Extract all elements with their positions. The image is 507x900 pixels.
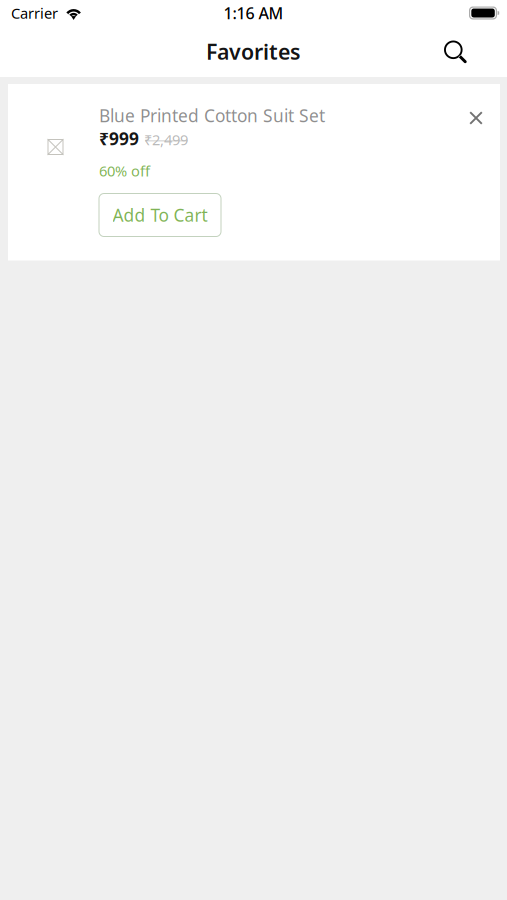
staticText: Favorites — [206, 37, 301, 66]
staticText: 1:16 AM — [223, 2, 283, 24]
staticText: ₹2,499 — [144, 130, 188, 149]
staticText: 60% off — [99, 161, 150, 180]
staticText: Blue Printed Cotton Suit Set — [99, 104, 325, 127]
staticText: ₹999 — [99, 127, 139, 150]
button[interactable]: Remove from favorites — [459, 104, 493, 132]
staticText: Carrier — [11, 3, 58, 23]
image — [47, 139, 63, 155]
staticText: Add To Cart — [112, 203, 207, 226]
button[interactable]: Add To Cart — [99, 193, 221, 236]
button[interactable]: Search — [433, 29, 477, 73]
